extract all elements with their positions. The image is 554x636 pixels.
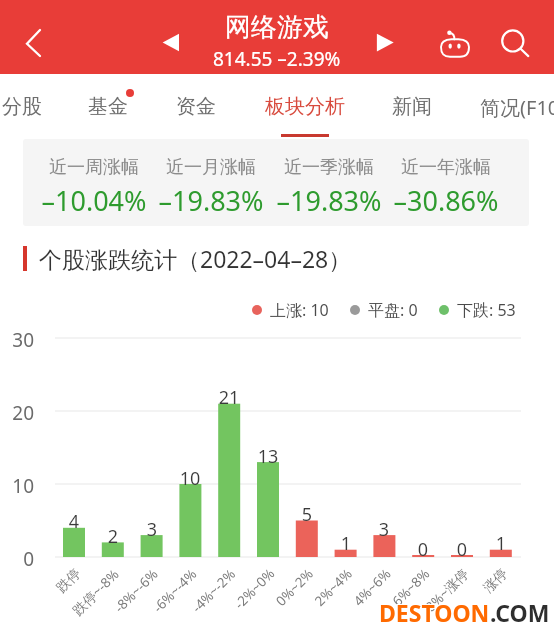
staticText: DESTOON	[378, 596, 489, 627]
staticText: 0	[403, 537, 443, 562]
button[interactable]: 近一年涨幅	[376, 156, 516, 219]
staticText: 近一年涨幅	[376, 156, 516, 179]
staticText: 近一月涨幅	[141, 156, 281, 179]
staticText: 1	[326, 531, 366, 556]
staticText: 5	[287, 502, 327, 527]
button[interactable]: AI assistant	[434, 22, 476, 66]
staticText: 下跌: 53	[457, 299, 516, 321]
staticText: 网络游戏	[225, 11, 329, 44]
staticText: 814.55 –2.39%	[213, 46, 341, 72]
staticText: DESTOON	[378, 597, 489, 628]
staticText: 21	[209, 385, 249, 410]
staticText: –19.83%	[141, 182, 281, 219]
staticText: 新闻	[392, 94, 432, 119]
staticText: .COM	[490, 596, 550, 627]
staticText: DESTOON	[379, 597, 490, 628]
staticText: 3	[364, 517, 404, 542]
button[interactable]: 分股	[2, 94, 42, 119]
staticText: .COM	[490, 598, 550, 629]
button[interactable]: 近一季涨幅	[259, 156, 399, 219]
staticText: DESTOON	[380, 596, 491, 627]
button[interactable]: 基金	[88, 94, 128, 119]
staticText: 0	[0, 546, 34, 572]
staticText: .COM	[491, 597, 551, 628]
button[interactable]: 新闻	[392, 94, 432, 119]
staticText: .COM	[491, 598, 551, 629]
staticText: –10.04%	[24, 182, 164, 219]
button[interactable]: Back	[10, 17, 58, 69]
button[interactable]: 资金	[176, 94, 216, 119]
staticText: 板块分析	[265, 94, 345, 119]
staticText: 近一周涨幅	[24, 156, 164, 179]
button[interactable]: 平盘: 0	[350, 299, 418, 321]
staticText: 分股	[2, 94, 42, 119]
staticText: –19.83%	[259, 182, 399, 219]
staticText: 近一季涨幅	[259, 156, 399, 179]
staticText: 平盘: 0	[368, 299, 418, 321]
staticText: 4	[54, 509, 94, 534]
staticText: 个股涨跌统计（2022–04–28）	[39, 243, 352, 274]
staticText: DESTOON	[378, 598, 489, 629]
staticText: 简况(F10	[480, 94, 554, 121]
button[interactable]: 板块分析	[265, 94, 345, 119]
staticText: 30	[0, 327, 34, 353]
staticText: 上涨: 10	[270, 299, 329, 321]
staticText: 2	[93, 524, 133, 549]
staticText: 0	[442, 537, 482, 562]
staticText: DESTOON	[380, 597, 491, 628]
staticText: 1	[481, 531, 521, 556]
button[interactable]: 近一周涨幅	[24, 156, 164, 219]
staticText: DESTOON	[380, 598, 491, 629]
button[interactable]: 上涨: 10	[252, 299, 329, 321]
button[interactable]: 简况(F10	[480, 94, 554, 121]
staticText: 基金	[88, 94, 128, 119]
staticText: 10	[170, 466, 210, 491]
button[interactable]: 近一月涨幅	[141, 156, 281, 219]
button[interactable]: Search	[494, 18, 540, 66]
staticText: .COM	[489, 597, 549, 628]
button[interactable]: 下跌: 53	[439, 299, 516, 321]
button[interactable]: Next sector	[366, 22, 408, 62]
staticText: DESTOON	[379, 596, 490, 627]
staticText: –30.86%	[376, 182, 516, 219]
staticText: 资金	[176, 94, 216, 119]
staticText: .COM	[491, 596, 551, 627]
staticText: .COM	[490, 597, 550, 628]
staticText: 20	[0, 400, 34, 426]
staticText: 10	[0, 473, 34, 499]
staticText: .COM	[489, 596, 549, 627]
staticText: 3	[132, 517, 172, 542]
staticText: DESTOON	[379, 598, 490, 629]
button[interactable]: Previous sector	[150, 22, 192, 62]
staticText: .COM	[489, 598, 549, 629]
staticText: 13	[248, 444, 288, 469]
